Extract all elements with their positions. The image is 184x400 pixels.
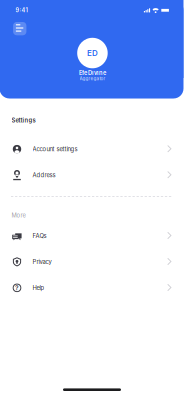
staticText: Privacy [32, 258, 51, 265]
button[interactable]: ? [0, 275, 184, 301]
staticText: ? [15, 284, 19, 292]
button[interactable]: Account settings [0, 136, 184, 162]
staticText: Settings [11, 117, 35, 124]
staticText: Account settings [32, 146, 77, 153]
button[interactable]: Address [0, 162, 184, 188]
staticText: ED [87, 48, 98, 58]
staticText: More [11, 212, 25, 219]
staticText: Help [32, 284, 44, 291]
staticText: Aggregator [79, 76, 105, 81]
staticText: Efe Divine [79, 69, 106, 76]
staticText: 9:41 [15, 7, 27, 14]
staticText: FAQs [32, 232, 46, 239]
staticText: Address [32, 172, 55, 179]
button[interactable]: FAQs [0, 223, 184, 249]
button[interactable]: Menu [13, 22, 26, 35]
button[interactable]: Privacy [0, 249, 184, 275]
